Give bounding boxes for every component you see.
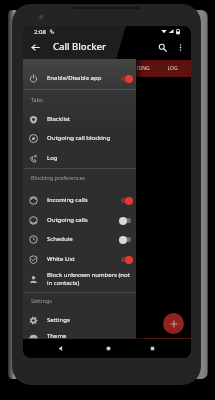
button[interactable]: BLACKLIST xyxy=(79,60,116,77)
staticText: Outgoing call blocking xyxy=(47,134,133,142)
staticText: Incoming calls xyxy=(47,196,117,204)
staticText: Outgoing calls xyxy=(47,216,117,224)
button[interactable]: Outgoing call blocking xyxy=(23,129,136,147)
staticText: Schedule xyxy=(47,235,117,243)
button[interactable]: Theme xyxy=(23,327,136,345)
staticText: Settings xyxy=(31,297,52,304)
button[interactable]: OUTGOING xyxy=(117,60,154,77)
staticText: Tabs xyxy=(31,96,43,103)
button[interactable]: Enable/Disable app xyxy=(23,69,136,87)
button[interactable]: Outgoing calls xyxy=(23,211,136,229)
button[interactable]: Schedule xyxy=(23,230,136,248)
button[interactable]: Block unknown numbers (not in contacts) xyxy=(23,269,136,289)
staticText: 2:08 xyxy=(34,28,46,36)
staticText: Theme xyxy=(47,332,133,340)
button[interactable]: Search xyxy=(154,39,170,55)
staticText: Enable/Disable app xyxy=(47,74,117,82)
button[interactable]: Settings xyxy=(23,311,136,329)
button[interactable]: Incoming calls xyxy=(23,191,136,209)
button[interactable]: Back xyxy=(27,39,43,55)
staticText: Call Blocker xyxy=(53,40,107,52)
staticText: Settings xyxy=(47,316,133,324)
button[interactable]: Add xyxy=(163,313,184,334)
button[interactable]: White List xyxy=(23,250,136,268)
button[interactable]: LOG xyxy=(154,60,191,77)
staticText: Log xyxy=(47,154,133,162)
staticText: Blacklist xyxy=(47,115,133,123)
staticText: OUTGOING xyxy=(122,65,150,72)
button[interactable]: Back xyxy=(51,339,69,357)
button[interactable]: Recents xyxy=(143,339,161,357)
button[interactable]: Blacklist xyxy=(23,110,136,128)
staticText: Block unknown numbers (not in contacts) xyxy=(47,271,133,287)
button[interactable]: Home xyxy=(99,339,117,357)
staticText: White List xyxy=(47,255,117,263)
staticText: LOG xyxy=(167,65,178,72)
staticText: Blocking preferences xyxy=(31,174,86,181)
button[interactable]: Log xyxy=(23,149,136,167)
button[interactable]: More options xyxy=(173,40,187,54)
